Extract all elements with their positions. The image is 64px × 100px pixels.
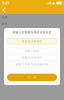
staticText: 请输入姓名 bbox=[24, 49, 39, 53]
staticText: 下一步 bbox=[27, 76, 36, 79]
button[interactable]: Back bbox=[1, 7, 7, 13]
staticText: 请选择业务类型 bbox=[21, 40, 42, 43]
staticText: 查询 bbox=[2, 22, 8, 26]
staticText: 请输入证件号码 bbox=[21, 56, 42, 59]
staticText: 请输入您需要办理的业务信息 bbox=[12, 31, 51, 34]
staticText: 9:41 bbox=[2, 0, 9, 6]
button[interactable]: 下一步 bbox=[7, 74, 57, 81]
staticText: 请输入手机号码及验证码 bbox=[15, 63, 48, 66]
staticText: 办理 bbox=[2, 16, 8, 19]
